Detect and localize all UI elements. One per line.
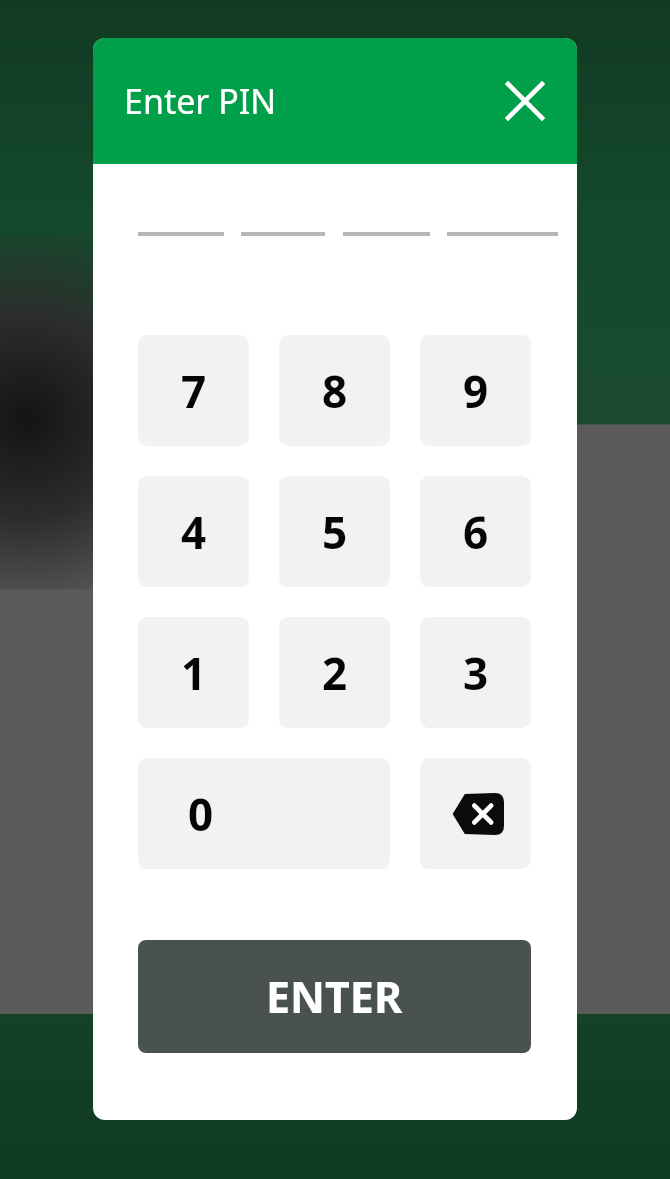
button[interactable]: 3 (420, 617, 531, 728)
button[interactable]: 9 (420, 335, 531, 446)
button[interactable]: 8 (279, 335, 390, 446)
staticText: 0 (138, 784, 263, 844)
button[interactable]: Close (497, 73, 553, 129)
button[interactable]: 5 (279, 476, 390, 587)
staticText: 5 (322, 502, 348, 562)
staticText: 1 (181, 643, 207, 703)
button[interactable]: 1 (138, 617, 249, 728)
staticText: 7 (181, 361, 207, 421)
staticText: ENTER (266, 967, 403, 1026)
staticText: 4 (181, 502, 207, 562)
button[interactable]: 0 (138, 758, 390, 869)
staticText: 8 (322, 361, 348, 421)
staticText: 6 (463, 502, 489, 562)
staticText: 2 (322, 643, 348, 703)
staticText: 3 (463, 643, 489, 703)
button[interactable]: 6 (420, 476, 531, 587)
button[interactable]: 4 (138, 476, 249, 587)
button[interactable]: Backspace (420, 758, 531, 869)
staticText: 9 (463, 361, 489, 421)
button[interactable]: 7 (138, 335, 249, 446)
button[interactable]: ENTER (138, 940, 531, 1053)
staticText: Enter PIN (124, 78, 277, 124)
button[interactable]: 2 (279, 617, 390, 728)
